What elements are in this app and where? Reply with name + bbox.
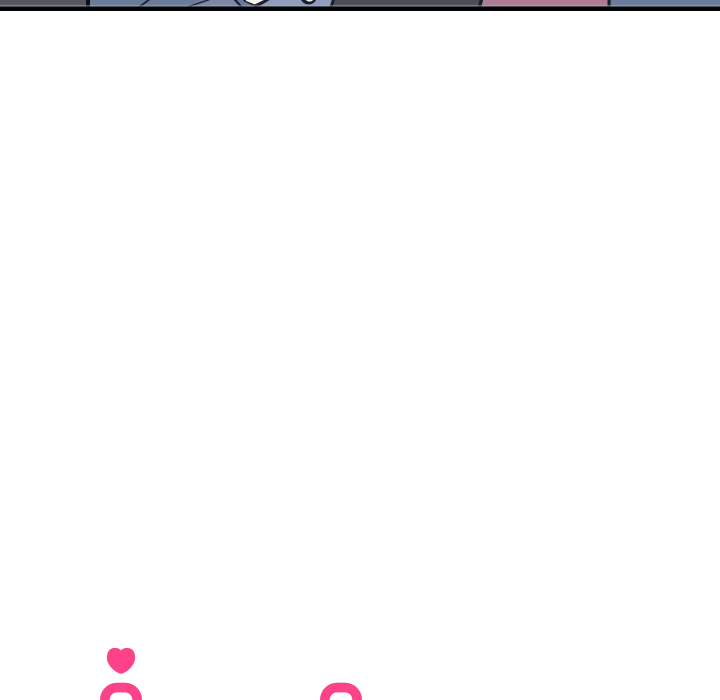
- button[interactable]: Like: [76, 647, 166, 700]
- button[interactable]: Comments: [296, 647, 386, 700]
